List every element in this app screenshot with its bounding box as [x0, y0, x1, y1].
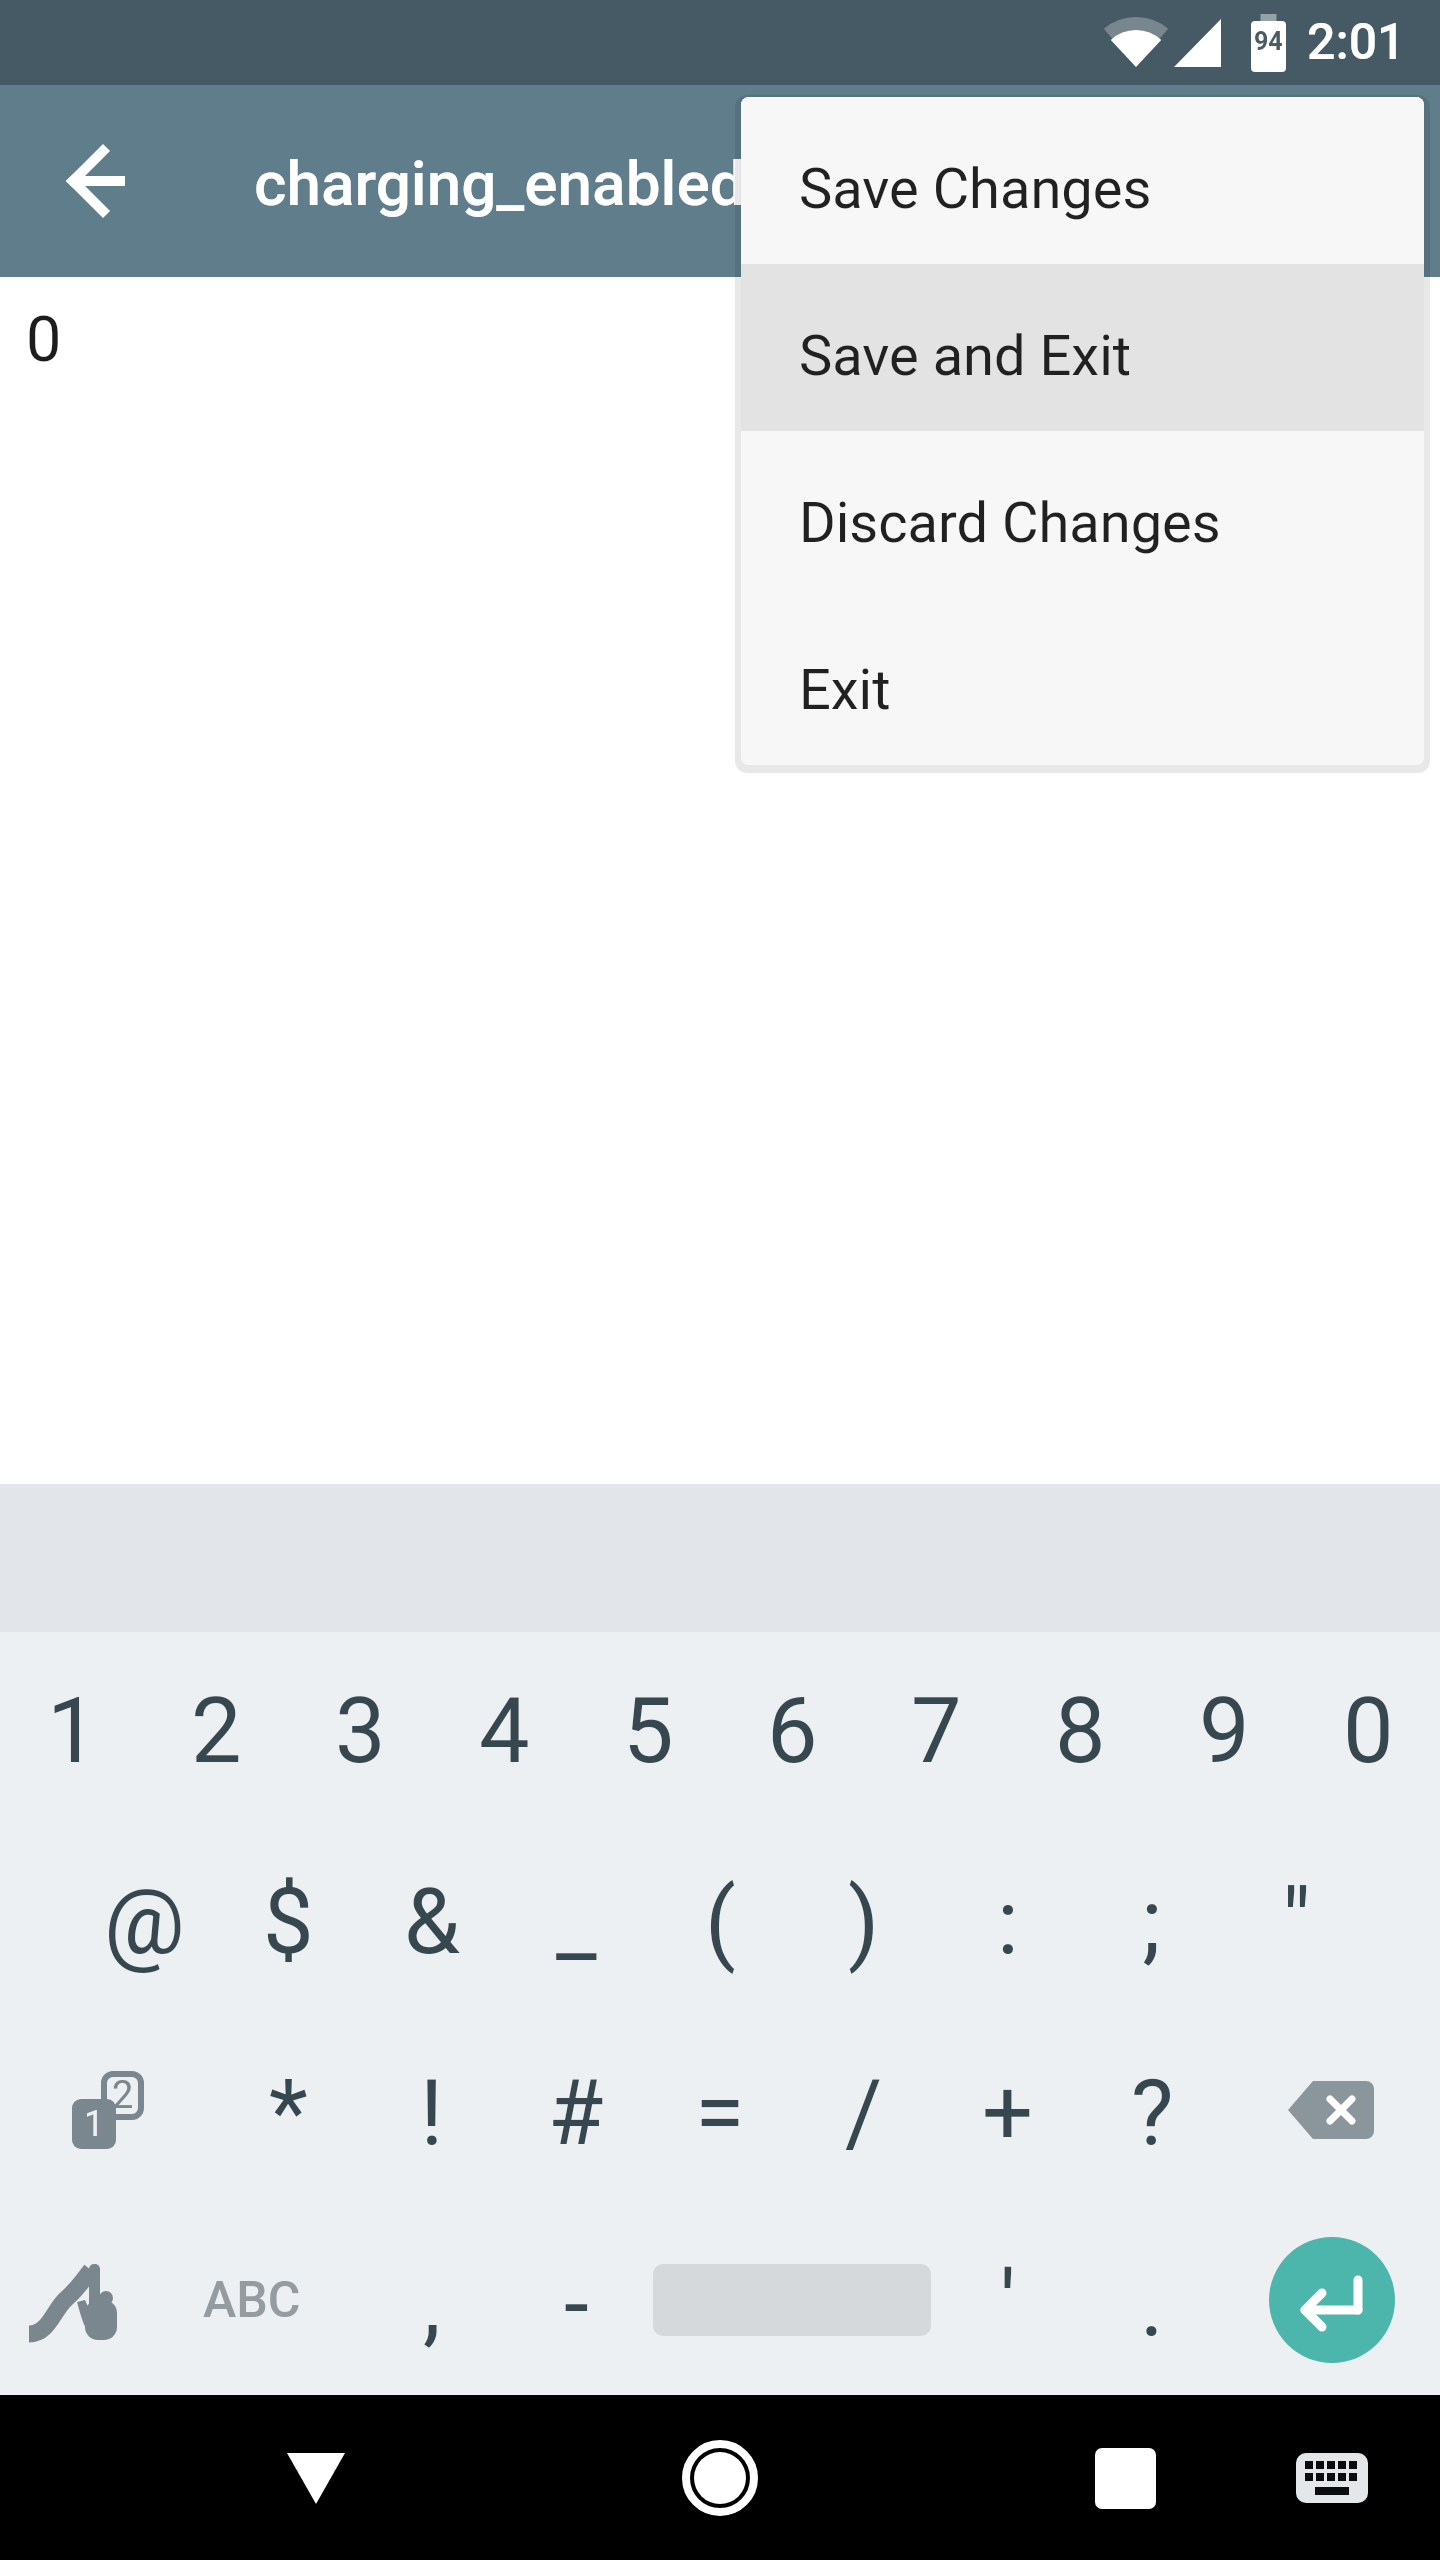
staticText: 7 — [911, 1679, 962, 1784]
button[interactable] — [665, 2423, 775, 2533]
button[interactable]: : — [936, 1823, 1080, 2014]
button[interactable] — [1284, 2430, 1380, 2526]
staticText: 2 — [191, 1679, 242, 1784]
button[interactable]: 2 — [0, 2014, 216, 2205]
staticText: & — [404, 1870, 460, 1975]
staticText: 5 — [623, 1679, 674, 1784]
button[interactable]: ( — [648, 1823, 792, 2014]
button[interactable]: . — [1080, 2205, 1224, 2395]
staticText: * — [269, 2061, 308, 2166]
button[interactable] — [0, 2205, 144, 2395]
button[interactable]: 3 — [288, 1632, 432, 1823]
button[interactable]: Discard Changes — [741, 431, 1424, 598]
staticText: 94 — [1254, 27, 1283, 56]
staticText: ! — [420, 2061, 444, 2166]
button[interactable]: ! — [360, 2014, 504, 2205]
button[interactable]: 7 — [864, 1632, 1008, 1823]
button[interactable]: ' — [936, 2205, 1080, 2395]
staticText: : — [997, 1870, 1019, 1975]
staticText: ( — [705, 1870, 736, 1975]
button[interactable]: # — [504, 2014, 648, 2205]
staticText: ) — [848, 1870, 880, 1975]
staticText: 6 — [767, 1679, 818, 1784]
button[interactable] — [648, 2205, 936, 2395]
button[interactable]: 6 — [720, 1632, 864, 1823]
button[interactable]: / — [792, 2014, 936, 2205]
staticText: 8 — [1055, 1679, 1106, 1784]
button[interactable]: 1 — [0, 1632, 144, 1823]
button[interactable]: * — [216, 2014, 360, 2205]
staticText: . — [1140, 2252, 1164, 2357]
staticText: ABC — [203, 2271, 301, 2330]
button[interactable] — [261, 2423, 371, 2533]
button[interactable]: & — [360, 1823, 504, 2014]
staticText: " — [1282, 1870, 1311, 1975]
staticText: Discard Changes — [799, 490, 1221, 556]
staticText: + — [982, 2061, 1034, 2166]
button[interactable]: ; — [1080, 1823, 1224, 2014]
button[interactable]: @ — [72, 1823, 216, 2014]
button[interactable] — [1070, 2423, 1180, 2533]
button[interactable] — [1224, 2205, 1440, 2395]
button[interactable]: Save Changes — [741, 97, 1424, 264]
staticText: 0 — [1343, 1679, 1394, 1784]
button[interactable]: _ — [504, 1823, 648, 2014]
staticText: ; — [1142, 1870, 1162, 1975]
staticText: charging_enabled — [254, 147, 745, 220]
button[interactable]: , — [360, 2205, 504, 2395]
staticText: _ — [556, 1870, 597, 1975]
button[interactable]: 5 — [576, 1632, 720, 1823]
staticText: # — [548, 2061, 604, 2166]
staticText: $ — [263, 1870, 314, 1975]
button[interactable] — [1224, 2014, 1440, 2205]
button[interactable]: Save and Exit — [741, 264, 1424, 431]
staticText: Save Changes — [799, 156, 1152, 222]
button[interactable]: ? — [1080, 2014, 1224, 2205]
button[interactable]: + — [936, 2014, 1080, 2205]
staticText: 1 — [47, 1679, 98, 1784]
staticText: 9 — [1199, 1679, 1250, 1784]
button[interactable]: 8 — [1008, 1632, 1152, 1823]
button[interactable]: $ — [216, 1823, 360, 2014]
staticText: @ — [104, 1870, 185, 1975]
button[interactable]: ) — [792, 1823, 936, 2014]
staticText: Save and Exit — [799, 323, 1132, 389]
staticText: 2 — [112, 2073, 134, 2118]
staticText: 4 — [479, 1679, 530, 1784]
staticText: 2:01 — [1307, 13, 1406, 72]
staticText: Exit — [799, 657, 891, 723]
button[interactable]: ABC — [144, 2205, 360, 2395]
button[interactable]: 4 — [432, 1632, 576, 1823]
staticText: 3 — [335, 1679, 386, 1784]
staticText: - — [564, 2252, 589, 2357]
button[interactable]: Exit — [741, 598, 1424, 765]
button[interactable]: 9 — [1152, 1632, 1296, 1823]
staticText: = — [695, 2061, 745, 2166]
button[interactable]: = — [648, 2014, 792, 2205]
staticText: ? — [1131, 2061, 1174, 2166]
button[interactable] — [43, 125, 155, 237]
staticText: 1 — [84, 2103, 105, 2145]
button[interactable]: " — [1224, 1823, 1368, 2014]
button[interactable]: 0 — [1296, 1632, 1440, 1823]
staticText: , — [423, 2252, 441, 2357]
staticText: / — [845, 2061, 883, 2166]
staticText: ' — [1000, 2252, 1016, 2357]
button[interactable]: 2 — [144, 1632, 288, 1823]
button[interactable]: - — [504, 2205, 648, 2395]
staticText: 0 — [26, 303, 62, 377]
